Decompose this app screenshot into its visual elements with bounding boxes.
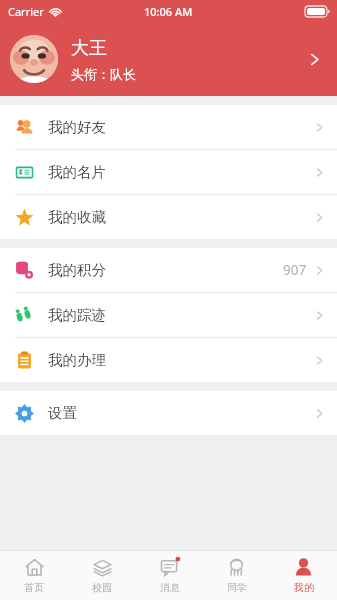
button[interactable]: 我的好友 xyxy=(0,105,337,149)
staticText: 10:06 AM xyxy=(144,4,193,19)
button[interactable]: 我的 xyxy=(270,551,337,600)
button[interactable]: 同学 xyxy=(203,551,270,600)
staticText: 大王 xyxy=(71,37,107,60)
staticText: 消息 xyxy=(160,581,180,594)
staticText: 我的踪迹 xyxy=(48,306,106,324)
staticText: 首页 xyxy=(24,581,44,594)
other: 个人资料 xyxy=(303,48,325,70)
button[interactable]: 我的办理 xyxy=(0,338,337,382)
staticText: 设置 xyxy=(48,404,77,422)
staticText: 头衔：队长 xyxy=(71,66,136,82)
staticText: 我的名片 xyxy=(48,163,106,181)
staticText: 我的 xyxy=(294,581,314,594)
staticText: 907 xyxy=(283,261,307,279)
button[interactable]: 大王 xyxy=(0,22,337,96)
staticText: 我的积分 xyxy=(48,261,106,279)
button[interactable]: 我的踪迹 xyxy=(0,293,337,337)
button[interactable]: 设置 xyxy=(0,391,337,435)
button[interactable]: 消息 xyxy=(136,551,203,600)
staticText: 校园 xyxy=(92,581,112,594)
button[interactable]: 我的名片 xyxy=(0,150,337,194)
button[interactable]: 校园 xyxy=(68,551,136,600)
button[interactable]: 首页 xyxy=(0,551,68,600)
staticText: 同学 xyxy=(227,581,247,594)
button[interactable]: 我的收藏 xyxy=(0,195,337,239)
staticText: 我的办理 xyxy=(48,351,106,369)
staticText: Carrier xyxy=(8,4,44,19)
staticText: 我的好友 xyxy=(48,118,106,136)
staticText: 我的收藏 xyxy=(48,208,106,226)
button[interactable]: 我的积分 xyxy=(0,248,337,292)
